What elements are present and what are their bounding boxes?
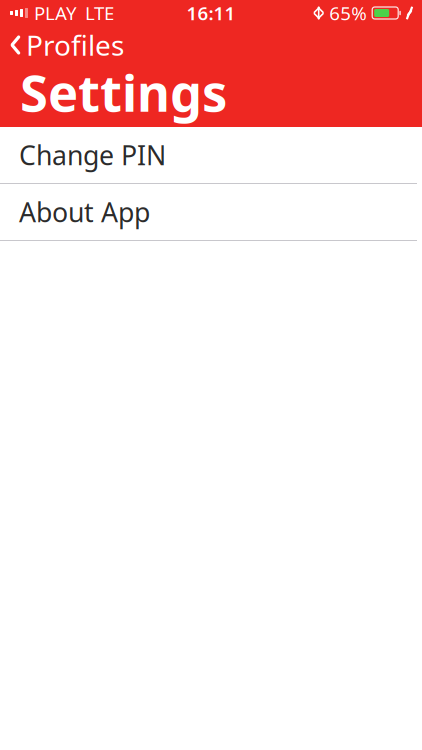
staticText: Change PIN [19, 137, 166, 173]
staticText: Settings [20, 58, 227, 126]
staticText: LTE [85, 1, 114, 25]
staticText: 65% [329, 1, 367, 25]
staticText: PLAY [34, 1, 77, 25]
button[interactable]: Change PIN [0, 127, 422, 183]
staticText: About App [19, 194, 150, 230]
staticText: 16:11 [186, 1, 235, 25]
button[interactable]: About App [0, 184, 422, 240]
staticText: Profiles [26, 26, 124, 64]
button[interactable]: Profiles [0, 26, 134, 64]
